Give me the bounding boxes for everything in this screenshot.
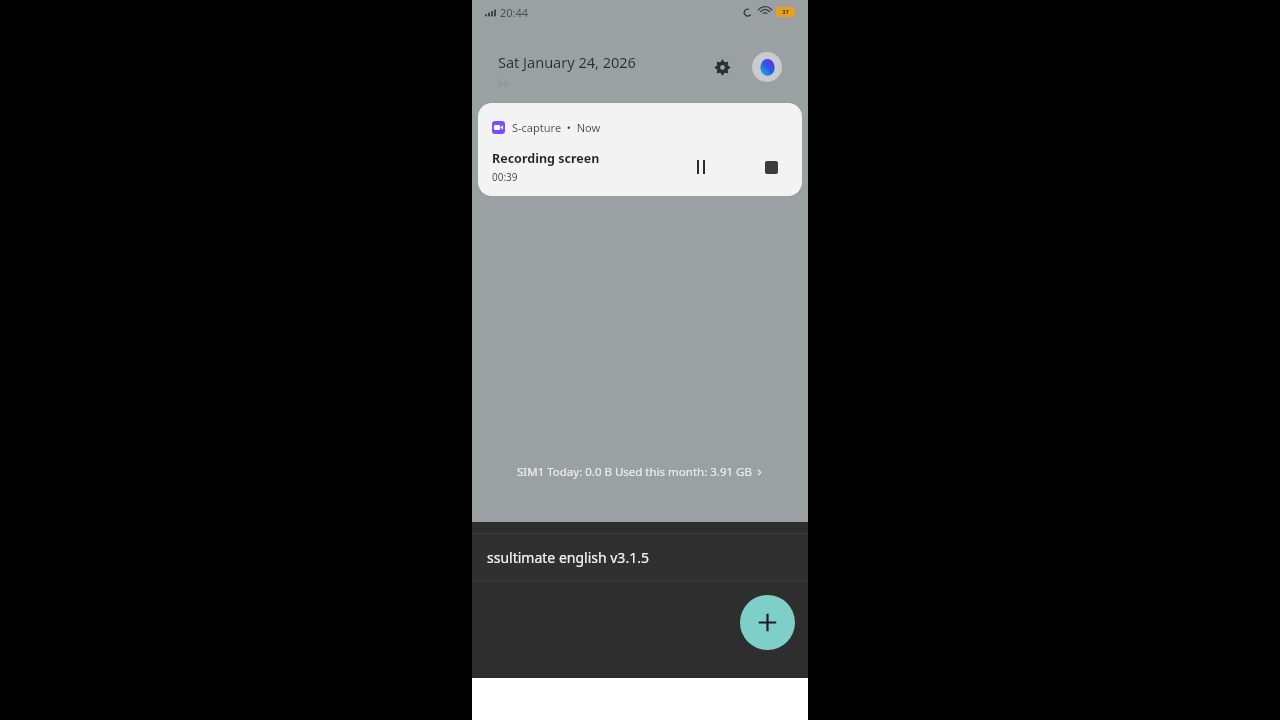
staticText: Recording screen <box>492 150 600 167</box>
staticText: Jio <box>498 76 509 89</box>
staticText: 20:44 <box>500 5 529 20</box>
button[interactable]: Pause <box>684 150 718 184</box>
staticText: 00:39 <box>492 170 518 184</box>
staticText: S-capture • Now <box>512 120 601 135</box>
button[interactable]: SIM1 Today: 0.0 B Used this month: 3.91 … <box>472 461 808 483</box>
staticText: ssultimate english v3.1.5 <box>487 548 649 567</box>
staticText: 37 <box>782 8 789 16</box>
button[interactable]: Settings <box>709 54 735 80</box>
staticText: Sat January 24, 2026 <box>498 52 636 72</box>
button[interactable]: Stop <box>754 150 788 184</box>
button[interactable]: Add <box>740 595 795 650</box>
staticText: SIM1 Today: 0.0 B Used this month: 3.91 … <box>517 464 752 480</box>
button[interactable]: ssultimate english v3.1.5 <box>472 534 808 581</box>
button[interactable]: S-capture • Now <box>478 103 802 196</box>
button[interactable]: Profile <box>752 52 782 82</box>
